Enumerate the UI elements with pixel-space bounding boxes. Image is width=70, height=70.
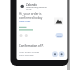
staticText: Zalando <box>26 3 38 7</box>
staticText: confirmed today <box>19 16 43 20</box>
staticText: Confirmation of P. <box>19 44 44 48</box>
staticText: Shop <box>57 35 62 38</box>
staticText: Track package <box>19 54 34 57</box>
staticText: View order <box>19 20 31 23</box>
staticText: to me <box>26 8 32 11</box>
staticText: Hi, your order is <box>19 12 42 16</box>
staticText: Your order arrives <box>19 50 40 53</box>
staticText: newsletter@zalando <box>26 6 47 9</box>
